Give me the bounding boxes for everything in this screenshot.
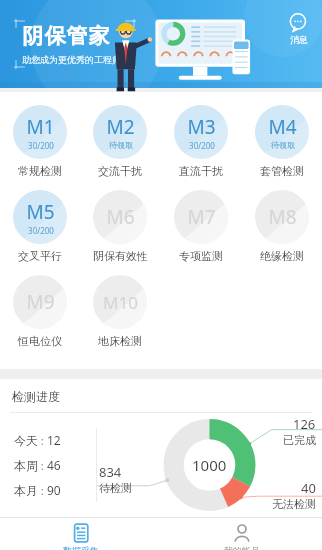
button[interactable]: M9 — [0, 272, 80, 351]
staticText: 直流干扰 — [179, 164, 223, 178]
button[interactable]: M7 — [160, 187, 241, 266]
staticText: 常规检测 — [18, 164, 62, 178]
staticText: 40 — [301, 479, 316, 497]
staticText: 检测进度 — [12, 389, 60, 404]
staticText: 我的帐号 — [224, 545, 260, 550]
button[interactable]: M3 — [160, 102, 241, 181]
staticText: M2 — [106, 114, 135, 140]
staticText: 数据采集 — [63, 545, 99, 550]
staticText: 助您成为更优秀的工程师 — [22, 54, 121, 65]
staticText: 12 — [47, 432, 61, 448]
staticText: M3 — [187, 114, 216, 140]
button[interactable]: 我的帐号 — [161, 518, 322, 550]
staticText: M1 — [26, 114, 55, 140]
staticText: 1000 — [192, 455, 227, 475]
button[interactable]: M4 — [241, 102, 322, 181]
staticText: 46 — [47, 457, 61, 473]
button[interactable]: M1 — [0, 102, 80, 181]
staticText: 30/200 — [28, 225, 54, 236]
staticText: 本月 — [14, 483, 38, 498]
staticText: 126 — [293, 415, 316, 433]
staticText: M7 — [187, 204, 216, 230]
staticText: M9 — [26, 289, 55, 315]
staticText: 待领取 — [109, 140, 133, 150]
staticText: M10 — [103, 291, 138, 314]
staticText: 消息 — [290, 34, 308, 45]
staticText: 30/200 — [189, 140, 215, 151]
button[interactable]: 数据采集 — [0, 518, 161, 550]
staticText: 地床检测 — [98, 334, 142, 348]
staticText: 套管检测 — [260, 164, 304, 178]
button[interactable]: M5 — [0, 187, 80, 266]
button[interactable]: M8 — [241, 187, 322, 266]
button[interactable]: M6 — [80, 187, 160, 266]
staticText: : — [38, 433, 47, 448]
staticText: M5 — [26, 199, 55, 225]
staticText: 本周 — [14, 458, 38, 473]
staticText: 无法检测 — [272, 497, 316, 511]
staticText: 交叉平行 — [18, 249, 62, 263]
button[interactable]: 消息 — [283, 10, 314, 48]
button[interactable]: M10 — [80, 272, 160, 351]
staticText: 30/200 — [28, 140, 54, 151]
staticText: 待检测 — [99, 481, 132, 495]
staticText: 专项监测 — [179, 249, 223, 263]
staticText: 绝缘检测 — [260, 249, 304, 263]
staticText: 今天 — [14, 433, 38, 448]
staticText: 恒电位仪 — [18, 334, 62, 348]
staticText: 90 — [47, 482, 61, 498]
staticText: 已完成 — [283, 433, 316, 447]
staticText: M4 — [268, 114, 297, 140]
staticText: 阴保有效性 — [93, 249, 148, 263]
staticText: M8 — [268, 204, 297, 230]
staticText: M6 — [106, 204, 135, 230]
staticText: : — [38, 483, 47, 498]
button[interactable]: M2 — [80, 102, 160, 181]
staticText: 834 — [99, 463, 122, 481]
staticText: 阴保管家 — [22, 23, 110, 49]
staticText: 交流干扰 — [98, 164, 142, 178]
staticText: : — [38, 458, 47, 473]
staticText: 待领取 — [271, 140, 295, 150]
